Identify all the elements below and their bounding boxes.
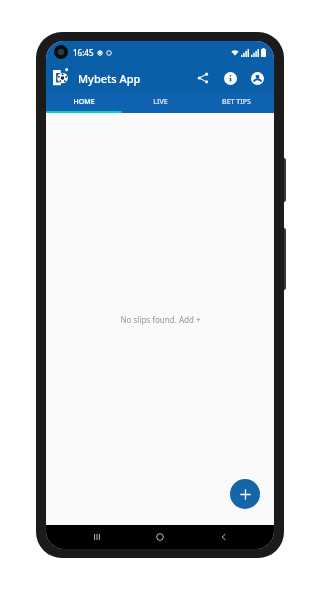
button[interactable]: HOME <box>46 93 122 111</box>
button[interactable]: Info <box>219 67 241 89</box>
staticText: 16:45 <box>73 47 94 58</box>
button[interactable]: LIVE <box>122 93 198 111</box>
button[interactable]: Recent apps <box>84 525 110 549</box>
staticText: BET TIPS <box>222 97 251 107</box>
button[interactable]: Account <box>246 67 268 89</box>
button[interactable]: Home <box>147 525 173 549</box>
button[interactable]: Back <box>211 525 237 549</box>
button[interactable]: Add bet slip <box>230 479 260 509</box>
staticText: No slips found. Add + <box>120 314 201 325</box>
button[interactable]: Share <box>192 67 214 89</box>
staticText: Mybets App <box>78 71 141 86</box>
staticText: LIVE <box>153 97 168 107</box>
button[interactable]: BET TIPS <box>198 93 274 111</box>
staticText: HOME <box>73 97 95 107</box>
